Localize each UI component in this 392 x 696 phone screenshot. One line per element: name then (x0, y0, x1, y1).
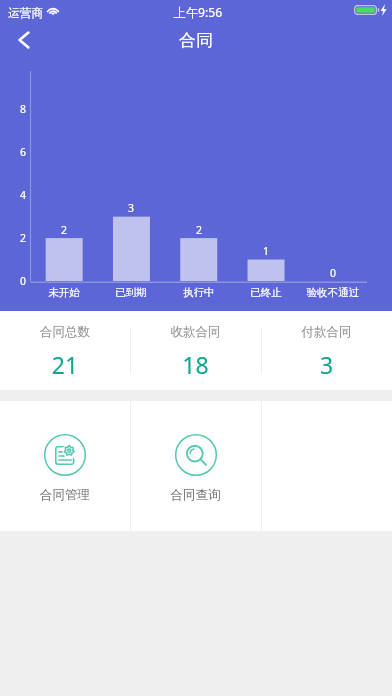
other: 合同查询 (175, 434, 217, 476)
staticText: 18 (130, 349, 261, 380)
staticText: 收款合同 (130, 324, 261, 340)
staticText: 4 (10, 188, 36, 202)
staticText: 2 (10, 231, 36, 245)
button[interactable]: 合同总数 (0, 311, 130, 390)
staticText: 已终止 (230, 286, 302, 299)
staticText: 3 (261, 349, 392, 380)
staticText: 2 (49, 223, 79, 237)
staticText: 1 (251, 244, 281, 258)
button[interactable]: 合同管理 (0, 401, 130, 531)
staticText: 2 (184, 223, 214, 237)
staticText: 验收不通过 (297, 286, 369, 299)
staticText: 已到期 (95, 286, 167, 299)
staticText: 合同查询 (130, 487, 261, 503)
other: 合同管理 (44, 434, 86, 476)
staticText: 6 (10, 145, 36, 159)
staticText: 合同管理 (0, 487, 130, 503)
staticText: 0 (318, 266, 348, 280)
staticText: 合同 (179, 30, 213, 51)
staticText: 运营商 (8, 6, 44, 21)
button[interactable]: Back (0, 18, 44, 62)
staticText: 执行中 (163, 286, 235, 299)
staticText: 0 (10, 274, 36, 288)
button[interactable]: 付款合同 (261, 311, 392, 390)
staticText: 21 (0, 349, 130, 380)
staticText: 8 (10, 102, 36, 116)
button[interactable]: 收款合同 (130, 311, 261, 390)
staticText: 未开始 (28, 286, 100, 299)
staticText: 合同总数 (0, 324, 130, 340)
staticText: 上午9:56 (2, 4, 392, 21)
staticText: 3 (116, 201, 146, 215)
button[interactable]: 合同查询 (130, 401, 261, 531)
staticText: 付款合同 (261, 324, 392, 340)
